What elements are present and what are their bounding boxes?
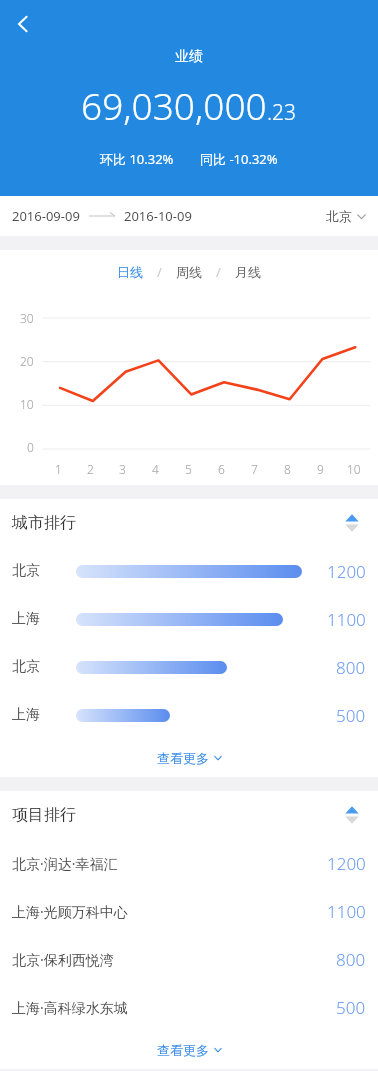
- button[interactable]: 上海: [0, 595, 378, 643]
- button[interactable]: 上海·高科绿水东城: [0, 983, 378, 1031]
- staticText: 500: [336, 704, 366, 727]
- button[interactable]: 北京: [0, 643, 378, 691]
- button[interactable]: Sort order: [338, 801, 366, 829]
- staticText: 北京·保利西悦湾: [12, 950, 114, 969]
- staticText: 10: [20, 396, 34, 412]
- button[interactable]: 查看更多: [0, 1031, 378, 1069]
- staticText: 月线: [235, 264, 261, 280]
- button[interactable]: 北京: [326, 208, 366, 224]
- staticText: 8: [284, 461, 291, 477]
- staticText: 业绩: [175, 48, 203, 66]
- button[interactable]: 2016-09-09: [12, 207, 192, 225]
- staticText: 查看更多: [157, 1042, 209, 1058]
- button[interactable]: 周线: [165, 259, 213, 285]
- staticText: 2016-10-09: [124, 207, 192, 225]
- staticText: 北京: [12, 562, 40, 580]
- staticText: 0: [27, 439, 34, 455]
- staticText: 项目排行: [12, 805, 76, 825]
- button[interactable]: 查看更多: [0, 739, 378, 777]
- staticText: 上海·光顾万科中心: [12, 902, 128, 921]
- staticText: 2016-09-09: [12, 207, 80, 225]
- staticText: 5: [185, 461, 192, 477]
- staticText: 4: [152, 461, 159, 477]
- staticText: 1200: [327, 852, 366, 875]
- button[interactable]: 北京·润达·幸福汇: [0, 839, 378, 887]
- staticText: 上海: [12, 610, 40, 628]
- staticText: 3: [119, 461, 126, 477]
- staticText: 1100: [327, 608, 366, 631]
- button[interactable]: 北京·保利西悦湾: [0, 935, 378, 983]
- button[interactable]: 上海: [0, 691, 378, 739]
- staticText: 7: [251, 461, 258, 477]
- staticText: /: [157, 263, 162, 281]
- staticText: 城市排行: [12, 513, 76, 533]
- staticText: 30: [20, 310, 34, 326]
- staticText: 6: [218, 461, 225, 477]
- staticText: .23: [267, 98, 297, 127]
- staticText: 北京·润达·幸福汇: [12, 854, 118, 873]
- staticText: 同比 -10.32%: [200, 150, 278, 168]
- staticText: 上海·高科绿水东城: [12, 998, 128, 1017]
- staticText: 20: [20, 353, 34, 369]
- button[interactable]: 上海·光顾万科中心: [0, 887, 378, 935]
- staticText: 北京: [326, 208, 352, 224]
- staticText: 69,030,000: [81, 80, 267, 130]
- staticText: 环比 10.32%: [100, 150, 174, 168]
- staticText: 800: [336, 656, 366, 679]
- staticText: 查看更多: [157, 750, 209, 766]
- button[interactable]: 北京: [0, 547, 378, 595]
- button[interactable]: 日线: [106, 259, 154, 285]
- staticText: 2: [87, 461, 94, 477]
- staticText: 北京: [12, 658, 40, 676]
- staticText: 1: [55, 461, 62, 477]
- staticText: /: [216, 263, 221, 281]
- staticText: 日线: [117, 264, 143, 280]
- staticText: 周线: [176, 264, 202, 280]
- staticText: 500: [336, 996, 366, 1019]
- button[interactable]: Back: [5, 6, 41, 42]
- staticText: 800: [336, 948, 366, 971]
- staticText: 1100: [327, 900, 366, 923]
- staticText: 9: [317, 461, 324, 477]
- button[interactable]: Sort order: [338, 509, 366, 537]
- staticText: 10: [347, 461, 361, 477]
- staticText: 上海: [12, 706, 40, 724]
- button[interactable]: 月线: [224, 259, 272, 285]
- staticText: 1200: [327, 560, 366, 583]
